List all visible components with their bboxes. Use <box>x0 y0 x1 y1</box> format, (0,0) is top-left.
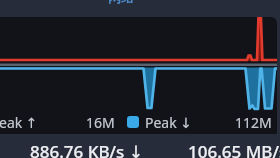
staticText: 16M <box>86 113 115 132</box>
staticText: 网络 <box>108 0 134 5</box>
button[interactable]: eak ↑ <box>0 17 277 134</box>
staticText: 112M <box>235 113 272 132</box>
staticText: 886.76 KB/s ↓ <box>30 140 143 158</box>
button[interactable]: 886.76 KB/s ↓ <box>0 134 280 158</box>
button[interactable]: 网络 <box>108 0 134 6</box>
staticText: Peak ↓ <box>145 113 193 132</box>
staticText: eak ↑ <box>0 113 38 132</box>
staticText: 106.65 MB/s <box>188 140 280 158</box>
